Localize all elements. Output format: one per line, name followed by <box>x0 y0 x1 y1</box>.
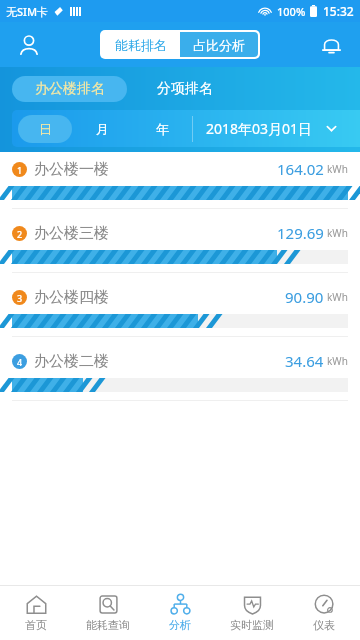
button[interactable]: 分析 <box>144 585 216 640</box>
button[interactable]: 占比分析 <box>180 32 258 57</box>
staticText: kWh <box>327 354 348 368</box>
staticText: 15:32 <box>323 3 354 19</box>
staticText: kWh <box>327 290 348 304</box>
staticText: 办公楼一楼 <box>34 160 109 179</box>
staticText: 34.64 <box>285 351 324 371</box>
staticText: 4 <box>17 356 23 368</box>
staticText: 办公楼排名 <box>35 80 105 98</box>
staticText: 办公楼四楼 <box>34 288 109 307</box>
staticText: 年 <box>156 121 169 137</box>
staticText: 日 <box>39 121 52 137</box>
button[interactable]: 实时监测 <box>216 585 288 640</box>
button[interactable]: 能耗排名 <box>102 32 180 57</box>
staticText: 分项排名 <box>157 80 213 98</box>
staticText: 90.90 <box>285 287 324 307</box>
staticText: 能耗查询 <box>86 618 130 632</box>
button[interactable]: 年 <box>132 115 192 143</box>
staticText: 2 <box>17 228 23 240</box>
button[interactable]: Notifications <box>314 28 348 62</box>
button[interactable]: Profile <box>12 28 46 62</box>
button[interactable]: 4 <box>0 344 360 408</box>
button[interactable]: 首页 <box>0 585 72 640</box>
staticText: 首页 <box>25 618 47 632</box>
button[interactable]: 1 <box>0 152 360 216</box>
button[interactable]: 2018年03月01日 <box>193 110 360 147</box>
staticText: 3 <box>17 292 23 304</box>
staticText: 月 <box>96 121 109 137</box>
staticText: 实时监测 <box>230 618 274 632</box>
button[interactable]: 能耗查询 <box>72 585 144 640</box>
button[interactable]: 分项排名 <box>127 76 242 102</box>
staticText: 2018年03月01日 <box>206 119 313 138</box>
staticText: kWh <box>327 226 348 240</box>
staticText: 164.02 <box>277 159 324 179</box>
button[interactable]: 仪表 <box>288 585 360 640</box>
button[interactable]: 2 <box>0 216 360 280</box>
button[interactable]: 月 <box>72 115 132 143</box>
staticText: 办公楼二楼 <box>34 352 109 371</box>
staticText: 100% <box>277 4 306 19</box>
button[interactable]: 日 <box>18 115 72 143</box>
staticText: 能耗排名 <box>115 37 167 53</box>
staticText: 129.69 <box>277 223 324 243</box>
staticText: 占比分析 <box>193 37 245 53</box>
staticText: 办公楼三楼 <box>34 224 109 243</box>
staticText: 分析 <box>169 618 191 632</box>
staticText: kWh <box>327 162 348 176</box>
staticText: 无SIM卡 <box>6 4 49 19</box>
button[interactable]: 办公楼排名 <box>12 76 127 102</box>
staticText: 仪表 <box>313 618 335 632</box>
button[interactable]: 3 <box>0 280 360 344</box>
staticText: 1 <box>17 164 23 176</box>
